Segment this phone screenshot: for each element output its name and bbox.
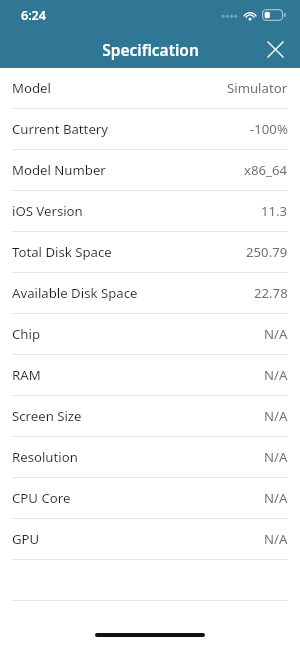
button[interactable]: Close [258,32,292,66]
staticText: N/A [264,530,288,548]
staticText: Chip [12,325,40,343]
button[interactable]: Model [0,68,300,108]
staticText: Screen Size [12,407,82,425]
button[interactable]: RAM [0,355,300,395]
staticText: 11.3 [261,202,288,220]
button[interactable]: Available Disk Space [0,273,300,313]
staticText: Specification [102,39,199,60]
staticText: 250.79 [246,243,288,261]
staticText: Resolution [12,448,78,466]
button[interactable]: Chip [0,314,300,354]
staticText: Model [12,79,51,97]
staticText: CPU Core [12,489,71,507]
button[interactable]: Model Number [0,150,300,190]
staticText: N/A [264,448,288,466]
staticText: 22.78 [254,284,288,302]
staticText: iOS Version [12,202,83,220]
staticText: 6:24 [21,7,46,24]
button[interactable]: CPU Core [0,478,300,518]
staticText: x86_64 [244,161,288,179]
button[interactable]: Screen Size [0,396,300,436]
staticText: Available Disk Space [12,284,138,302]
staticText: Current Battery [12,120,108,138]
staticText: N/A [264,489,288,507]
staticText: N/A [264,366,288,384]
staticText: Model Number [12,161,106,179]
button[interactable]: iOS Version [0,191,300,231]
button[interactable]: Current Battery [0,109,300,149]
button[interactable]: Total Disk Space [0,232,300,272]
button[interactable]: Resolution [0,437,300,477]
staticText: -100% [250,120,288,138]
staticText: N/A [264,325,288,343]
button[interactable]: GPU [0,519,300,559]
staticText: N/A [264,407,288,425]
staticText: Simulator [227,79,288,97]
staticText: Total Disk Space [12,243,112,261]
staticText: GPU [12,530,40,548]
staticText: RAM [12,366,41,384]
